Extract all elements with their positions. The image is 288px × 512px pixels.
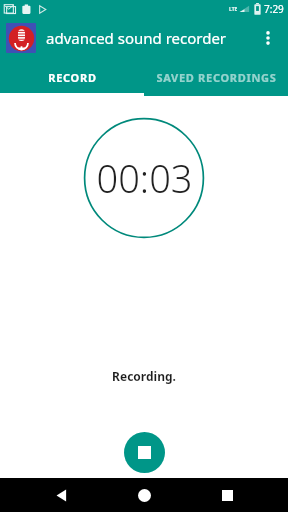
staticText: 7:29 — [264, 2, 284, 16]
staticText: 00:03 — [96, 152, 193, 204]
staticText: advanced sound recorder — [46, 28, 227, 48]
staticText: Recording. — [112, 368, 176, 384]
button[interactable]: Back — [39, 478, 83, 512]
staticText: SAVED RECORDINGS — [156, 70, 277, 85]
button[interactable]: More options — [252, 22, 284, 54]
staticText: RECORD — [48, 70, 97, 85]
button[interactable]: Stop recording — [124, 432, 165, 473]
button[interactable]: SAVED RECORDINGS — [144, 58, 288, 96]
button[interactable]: Home — [122, 478, 166, 512]
staticText: LTE — [229, 6, 238, 13]
button[interactable]: RECORD — [0, 58, 144, 96]
button[interactable]: Recent apps — [205, 478, 249, 512]
